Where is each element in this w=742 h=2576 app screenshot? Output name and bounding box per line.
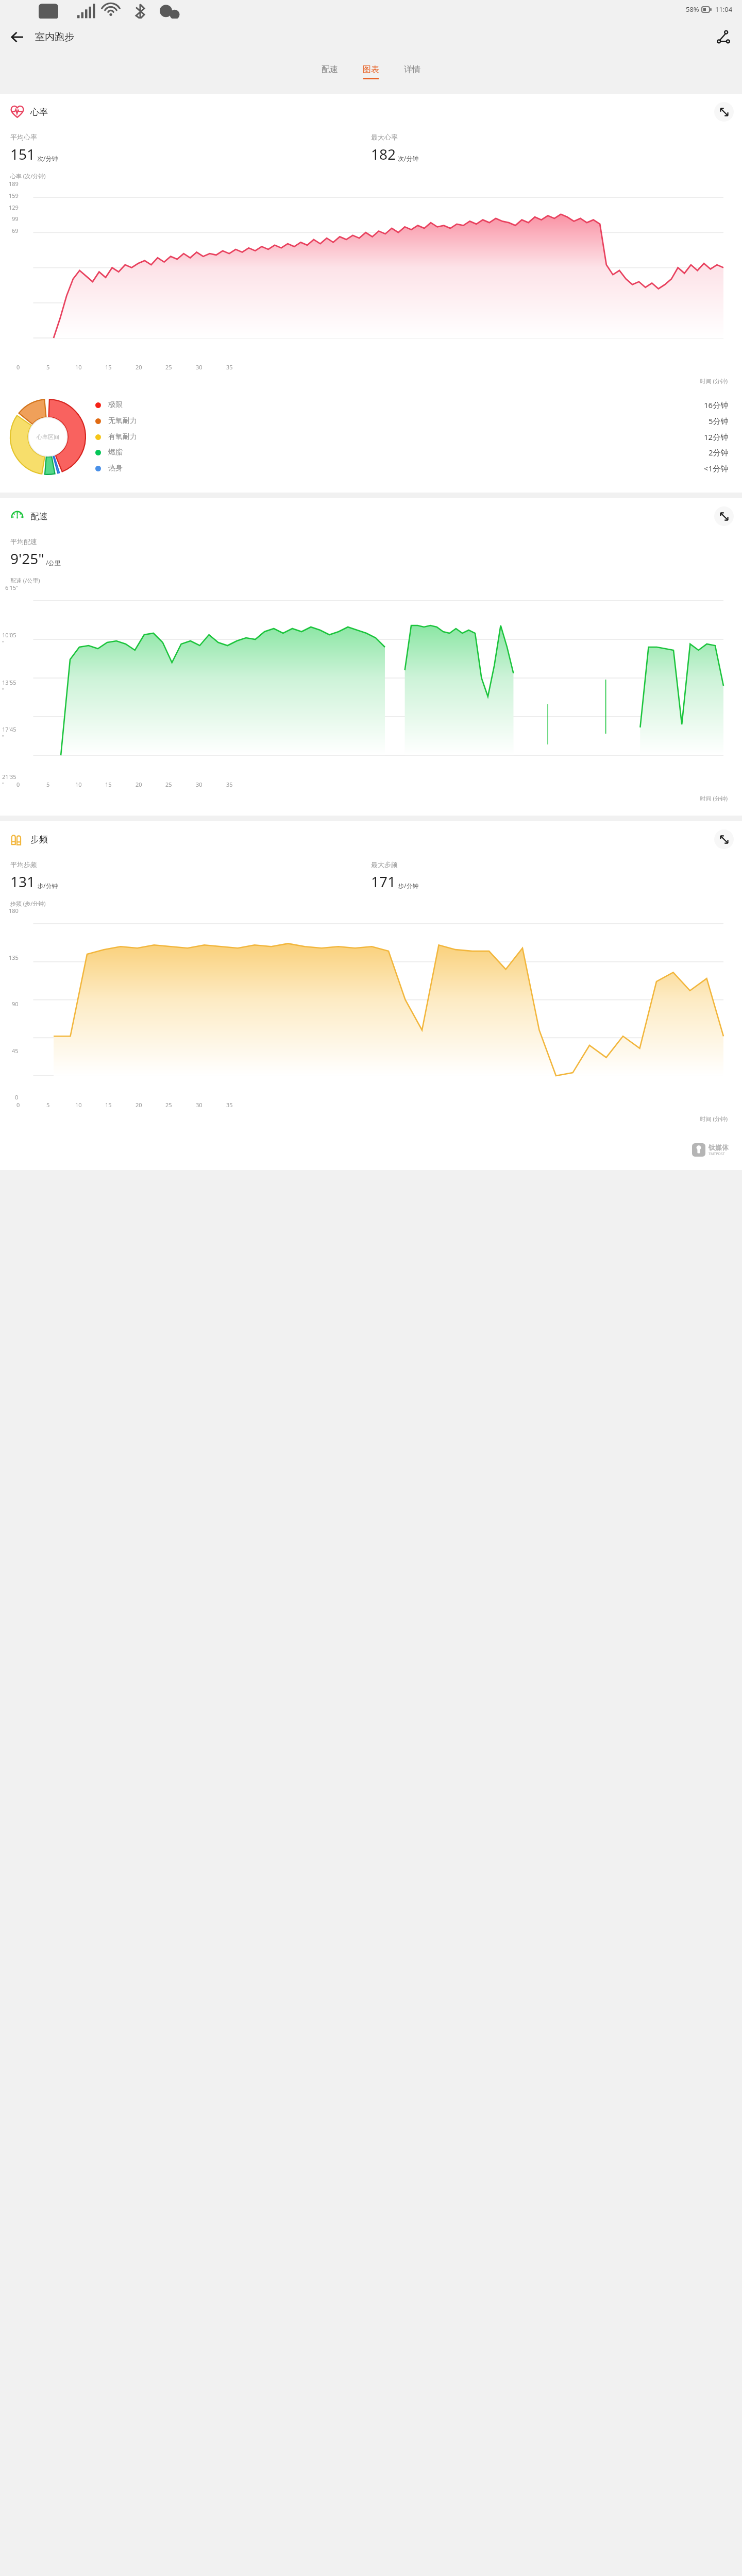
staticText: 配速 [30,511,48,522]
staticText: 步频 (步/分钟) [10,900,46,907]
staticText: 25 [165,1101,172,1109]
staticText: 次/分钟 [398,154,419,162]
staticText: 10 [75,363,82,371]
staticText: 5 [46,1101,50,1109]
staticText: 无氧耐力 [108,416,137,426]
staticText: 182 [371,144,396,164]
staticText: 步频 [30,834,48,845]
staticText: 58% [686,5,699,14]
staticText: 心率 [30,107,48,117]
button[interactable]: 有氧耐力 [95,432,729,442]
staticText: 燃脂 [108,448,123,457]
staticText: 35 [226,363,233,371]
staticText: 189 [9,180,19,188]
staticText: 15 [105,1101,112,1109]
staticText: 131 [10,872,36,891]
staticText: 步/分钟 [398,882,419,890]
staticText: 配速 (/公里) [10,577,40,584]
staticText: 30 [196,363,203,371]
staticText: 6'15" [5,584,19,591]
staticText: 90 [12,1000,19,1008]
staticText: 图表 [363,64,379,75]
staticText: 时间 (分钟) [0,1115,728,1123]
button[interactable]: 配速 [318,62,341,81]
staticText: 5 [46,781,50,788]
staticText: 20 [136,1101,142,1109]
staticText: 151 [10,144,36,164]
staticText: 时间 (分钟) [0,377,728,385]
staticText: 159 [9,192,19,199]
staticText: 配速 [322,64,338,75]
staticText: 极限 [108,400,123,410]
staticText: 35 [226,781,233,788]
staticText: <1分钟 [704,463,729,473]
button[interactable]: 热身 [95,463,729,473]
staticText: 步/分钟 [37,882,58,890]
staticText: 30 [196,781,203,788]
staticText: 171 [371,872,396,891]
staticText: 5分钟 [709,416,729,426]
staticText: 详情 [404,64,420,75]
staticText: 180 [9,907,19,914]
staticText: 室内跑步 [35,31,74,43]
staticText: 16分钟 [704,400,729,410]
staticText: 35 [226,1101,233,1109]
staticText: 25 [165,363,172,371]
button[interactable]: 燃脂 [95,447,729,457]
staticText: 有氧耐力 [108,432,137,442]
staticText: 45 [12,1047,19,1055]
staticText: 17'45" [2,725,19,741]
staticText: 0 [16,363,20,371]
staticText: 0 [16,1101,20,1109]
staticText: 25 [165,781,172,788]
staticText: 心率区间 [37,433,59,440]
staticText: 20 [136,781,142,788]
staticText: 20 [136,363,142,371]
button[interactable]: 极限 [95,400,729,410]
staticText: 心率 (次/分钟) [10,172,46,180]
button[interactable]: Expand [714,102,734,122]
staticText: 10'05" [2,631,19,647]
button[interactable]: 详情 [401,62,424,81]
staticText: 最大心率 [371,133,398,141]
button[interactable]: 无氧耐力 [95,416,729,426]
button[interactable]: Expand [714,829,734,849]
staticText: 热身 [108,464,123,473]
staticText: 5 [46,363,50,371]
staticText: 69 [12,227,19,234]
button[interactable]: Share [710,24,737,50]
staticText: 9'25" [10,549,44,568]
staticText: 最大步频 [371,860,398,869]
staticText: 30 [196,1101,203,1109]
button[interactable]: 图表 [360,62,382,81]
staticText: 15 [105,363,112,371]
staticText: 2分钟 [709,447,729,457]
staticText: 时间 (分钟) [0,794,728,802]
staticText: 15 [105,781,112,788]
staticText: 0 [16,781,20,788]
staticText: 13'55" [2,679,19,694]
staticText: 21'35" [2,773,19,788]
staticText: /公里 [46,558,61,567]
staticText: 钛媒体 [709,1143,729,1151]
staticText: 0 [15,1093,19,1101]
button[interactable]: Expand [714,506,734,526]
staticText: 12分钟 [704,432,729,442]
staticText: 平均心率 [10,133,37,141]
staticText: 次/分钟 [37,154,58,162]
staticText: 11:04 [715,5,733,14]
staticText: TMTPOST [709,1151,725,1157]
staticText: 平均配速 [10,537,37,546]
staticText: 10 [75,781,82,788]
staticText: 10 [75,1101,82,1109]
staticText: 99 [12,215,19,223]
button[interactable]: Back [3,23,32,52]
staticText: 135 [9,954,19,961]
staticText: 129 [9,204,19,211]
staticText: 平均步频 [10,860,37,869]
